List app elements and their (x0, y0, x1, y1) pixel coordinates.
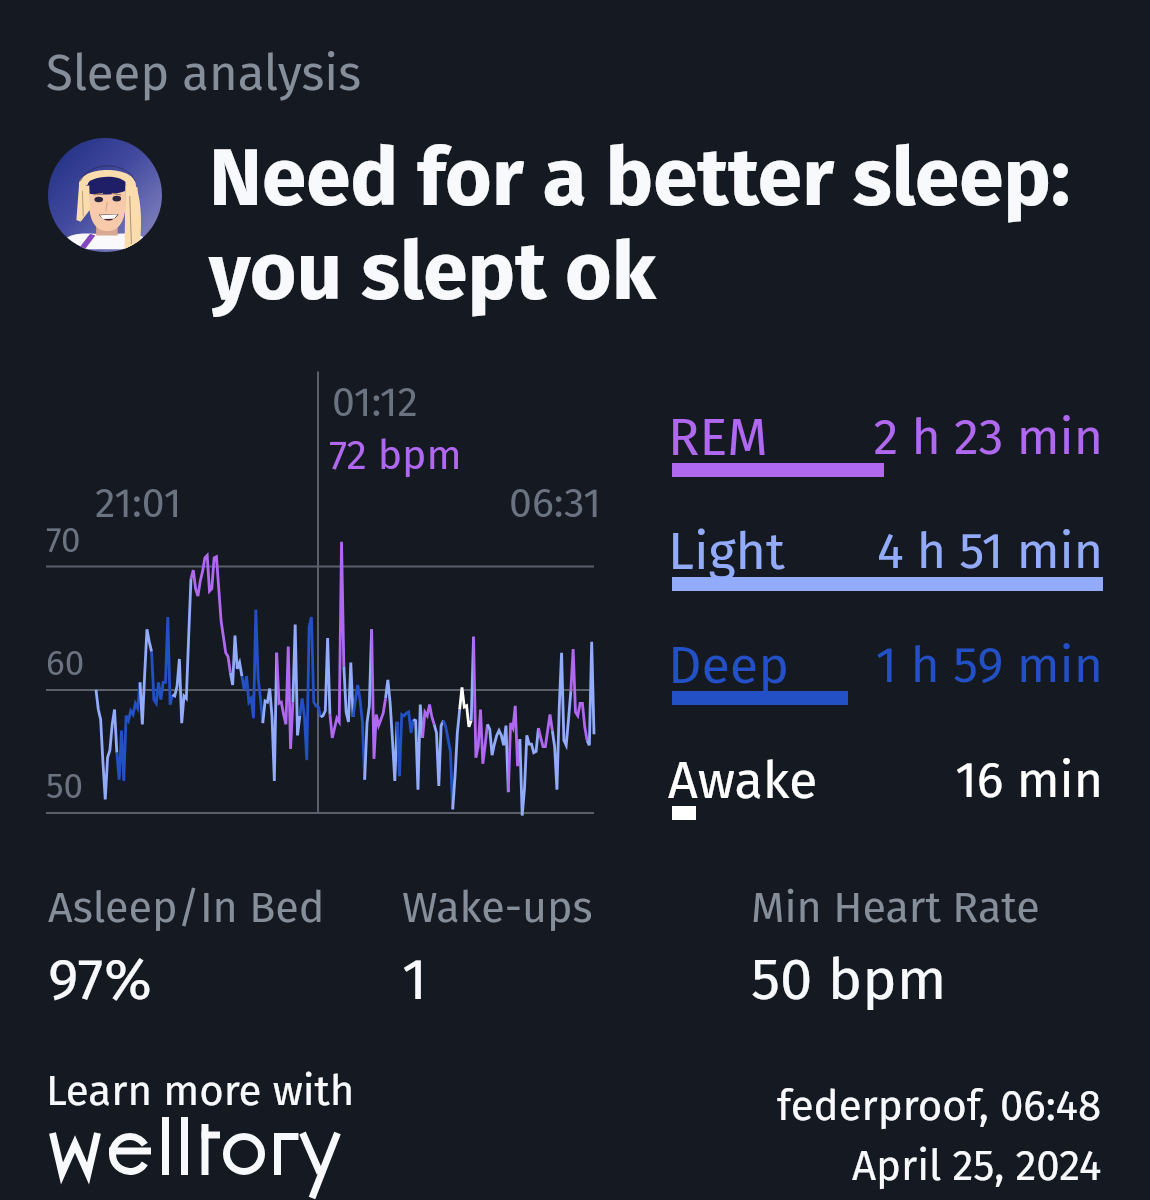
button[interactable]: Deep (672, 636, 1103, 708)
staticText: Min Heart Rate (751, 882, 1040, 934)
button[interactable]: Sleep analysis (46, 36, 446, 106)
staticText: 01:12 (332, 378, 418, 427)
button[interactable]: Wake-ups (402, 882, 732, 1010)
staticText: Sleep analysis (46, 44, 362, 103)
button[interactable]: Learn more with welltory (46, 1066, 386, 1190)
button[interactable]: Asleep/In Bed (48, 882, 388, 1010)
button[interactable]: Light (672, 522, 1103, 594)
button[interactable]: Heart rate during sleep chart (46, 370, 594, 815)
staticText: 2 h 23 min (672, 407, 1103, 467)
staticText: Deep (668, 634, 790, 696)
staticText: 1 h 59 min (672, 635, 1103, 695)
staticText: 60 (46, 642, 85, 684)
staticText: 72 bpm (329, 431, 462, 480)
button[interactable]: federproof, 06:48 (660, 1081, 1102, 1191)
staticText: Light (668, 520, 785, 582)
button[interactable]: Profile avatar (48, 138, 162, 252)
button[interactable]: Min Heart Rate (751, 882, 1091, 1010)
staticText: 1 (402, 945, 428, 1010)
staticText: Wake-ups (402, 882, 593, 934)
staticText: 06:31 (509, 479, 602, 528)
staticText: 21:01 (95, 479, 182, 528)
button[interactable]: Need for a better sleep: you slept ok (209, 130, 1089, 330)
staticText: 4 h 51 min (672, 521, 1103, 581)
staticText: REM (668, 406, 768, 468)
staticText: Asleep/In Bed (48, 882, 325, 934)
staticText: 50 bpm (751, 945, 947, 1010)
staticText: 50 (46, 765, 84, 807)
staticText: Need for a better sleep: you slept ok (209, 130, 1071, 320)
staticText: 97% (48, 945, 152, 1010)
staticText: federproof, 06:48 (777, 1081, 1102, 1131)
staticText: 16 min (672, 750, 1103, 810)
staticText: Awake (668, 749, 818, 811)
button[interactable]: REM (672, 408, 1103, 480)
staticText: Learn more with (46, 1066, 386, 1116)
button[interactable]: Awake (672, 751, 1103, 823)
staticText: April 25, 2024 (852, 1141, 1102, 1191)
staticText: 70 (46, 519, 81, 561)
